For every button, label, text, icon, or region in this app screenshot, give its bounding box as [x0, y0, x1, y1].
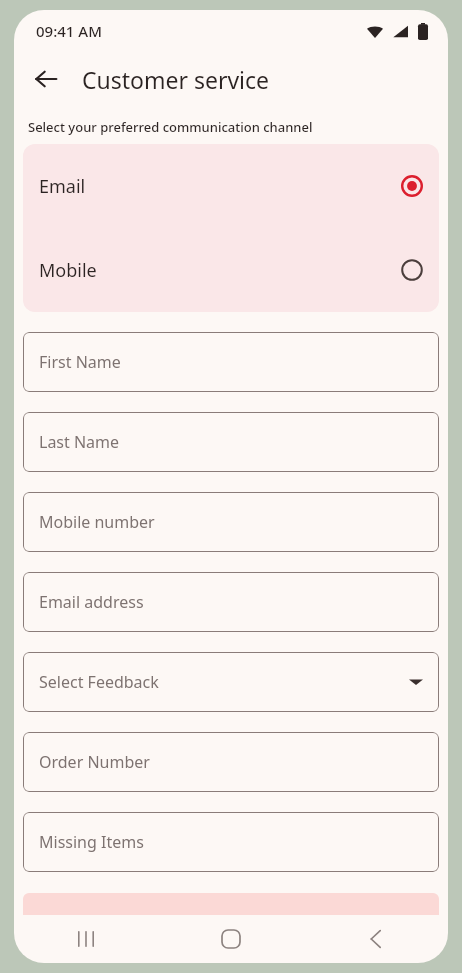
- button[interactable]: First Name: [23, 332, 439, 392]
- staticText: Customer service: [82, 64, 270, 95]
- button[interactable]: Mobile number: [23, 492, 439, 552]
- staticText: Email address: [39, 591, 144, 613]
- staticText: Select Feedback: [39, 671, 159, 693]
- button[interactable]: Back: [24, 57, 68, 101]
- staticText: Order Number: [39, 751, 150, 773]
- button[interactable]: Select Feedback: [23, 652, 439, 712]
- button[interactable]: Mobile: [23, 228, 439, 312]
- button[interactable]: Recents: [14, 915, 158, 963]
- staticText: Select your preferred communication chan…: [28, 118, 313, 136]
- staticText: Last Name: [39, 431, 120, 453]
- staticText: Mobile: [39, 258, 97, 283]
- button[interactable]: Order Number: [23, 732, 439, 792]
- staticText: 09:41 AM: [36, 21, 102, 41]
- staticText: Mobile number: [39, 511, 155, 533]
- staticText: Email: [39, 174, 86, 199]
- button[interactable]: Email address: [23, 572, 439, 632]
- button[interactable]: Missing Items: [23, 812, 439, 872]
- button[interactable]: Back: [303, 915, 448, 963]
- button[interactable]: Email: [23, 144, 439, 228]
- staticText: First Name: [39, 351, 121, 373]
- button[interactable]: Home: [158, 915, 303, 963]
- staticText: Missing Items: [39, 831, 144, 853]
- button[interactable]: Last Name: [23, 412, 439, 472]
